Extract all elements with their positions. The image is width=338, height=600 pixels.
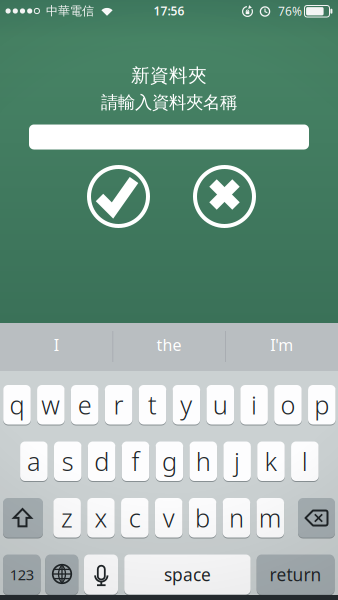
staticText: d bbox=[94, 444, 109, 478]
staticText: k bbox=[264, 444, 277, 478]
staticText: b bbox=[195, 501, 210, 534]
staticText: 請輸入資料夾名稱 bbox=[101, 92, 237, 113]
staticText: 17:56 bbox=[153, 3, 184, 19]
staticText: c bbox=[129, 501, 141, 534]
staticText: 新資料夾 bbox=[131, 64, 207, 87]
staticText: g bbox=[162, 444, 177, 478]
staticText: 中華電信 bbox=[46, 4, 94, 18]
staticText: 76% bbox=[278, 3, 302, 19]
staticText: p bbox=[314, 388, 329, 421]
staticText: a bbox=[27, 444, 41, 478]
staticText: return bbox=[270, 563, 322, 586]
staticText: x bbox=[94, 501, 107, 534]
staticText: I bbox=[54, 334, 59, 355]
staticText: v bbox=[163, 501, 175, 534]
staticText: w bbox=[41, 388, 60, 421]
staticText: e bbox=[78, 388, 92, 421]
staticText: n bbox=[229, 501, 244, 534]
staticText: q bbox=[9, 388, 24, 421]
staticText: h bbox=[196, 444, 211, 478]
staticText: m bbox=[259, 501, 282, 534]
staticText: u bbox=[213, 388, 228, 421]
staticText: I'm bbox=[270, 334, 293, 355]
staticText: 123 bbox=[10, 565, 34, 584]
staticText: j bbox=[234, 444, 240, 478]
staticText: o bbox=[280, 388, 295, 421]
staticText: i bbox=[251, 388, 257, 421]
staticText: s bbox=[62, 444, 74, 478]
staticText: the bbox=[156, 334, 181, 355]
staticText: space bbox=[164, 563, 211, 586]
staticText: t bbox=[148, 388, 157, 421]
staticText: f bbox=[131, 444, 139, 478]
staticText: r bbox=[114, 388, 124, 421]
staticText: z bbox=[61, 501, 73, 534]
staticText: y bbox=[180, 388, 192, 421]
staticText: l bbox=[302, 444, 308, 478]
